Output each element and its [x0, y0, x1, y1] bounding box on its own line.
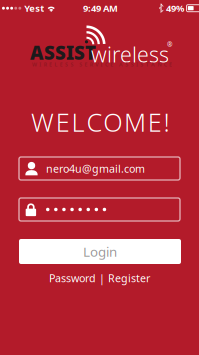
button[interactable]: nero4u@gmail.com: [19, 157, 180, 180]
staticText: Password: [49, 271, 96, 285]
staticText: WIRELESS SERVICE ASSISTANCE: [32, 61, 172, 68]
staticText: 9:49 AM: [83, 2, 118, 14]
button[interactable]: Password: [49, 271, 96, 285]
staticText: wireless: [91, 40, 169, 68]
button[interactable]: Login: [19, 239, 181, 264]
button[interactable]: [19, 198, 180, 221]
staticText: nero4u@gmail.com: [46, 161, 145, 176]
staticText: ASSIST: [30, 40, 96, 65]
staticText: WELCOME!: [31, 105, 170, 139]
staticText: Login: [83, 243, 117, 260]
staticText: Register: [108, 271, 150, 285]
staticText: Yest: [24, 2, 44, 14]
staticText: |: [96, 271, 108, 285]
staticText: 49%: [166, 2, 184, 14]
staticText: ®: [167, 40, 173, 49]
button[interactable]: Register: [108, 271, 150, 285]
